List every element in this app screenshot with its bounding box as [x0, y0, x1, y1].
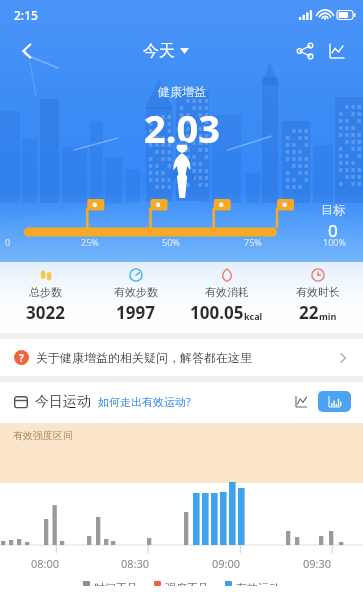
- staticText: kcal: [244, 310, 263, 322]
- staticText: 75%: [244, 236, 262, 248]
- staticText: 100%: [323, 236, 346, 248]
- staticText: 有效步数: [114, 285, 158, 299]
- staticText: 健康增益: [158, 84, 206, 99]
- button[interactable]: 趋势: [321, 35, 353, 67]
- staticText: 时间不足: [94, 581, 138, 586]
- staticText: 09:00: [212, 556, 241, 571]
- button[interactable]: 柱状图: [318, 391, 351, 412]
- button[interactable]: 有效运动: [225, 581, 280, 586]
- staticText: 关于健康增益的相关疑问，解答都在这里: [36, 350, 252, 365]
- staticText: 目标: [321, 202, 345, 217]
- staticText: 2:15: [14, 7, 38, 23]
- staticText: 1997: [116, 301, 155, 324]
- staticText: 0: [5, 236, 11, 248]
- button[interactable]: 有效时长: [272, 267, 363, 324]
- staticText: 有效时长: [296, 285, 340, 299]
- staticText: 今日运动: [35, 393, 91, 411]
- staticText: 09:30: [303, 556, 332, 571]
- button[interactable]: 返回: [10, 34, 44, 68]
- staticText: 50%: [162, 236, 180, 248]
- button[interactable]: 有效步数: [90, 267, 181, 324]
- staticText: 有效消耗: [205, 285, 249, 299]
- staticText: 25%: [81, 236, 99, 248]
- staticText: 有效强度区间: [13, 429, 73, 442]
- button[interactable]: 分享: [289, 35, 321, 67]
- staticText: 08:30: [121, 556, 150, 571]
- staticText: 3022: [26, 301, 65, 324]
- staticText: 2.03: [144, 102, 220, 154]
- staticText: 22: [299, 301, 319, 324]
- button[interactable]: 强度不足: [154, 581, 209, 586]
- button[interactable]: 有效消耗: [181, 267, 272, 324]
- button[interactable]: 曲线图: [285, 391, 318, 412]
- staticText: 总步数: [29, 285, 62, 299]
- staticText: min: [319, 310, 337, 322]
- button[interactable]: 时间不足: [83, 581, 138, 586]
- staticText: 有效运动: [236, 581, 280, 586]
- staticText: 100.05: [190, 301, 244, 324]
- button[interactable]: 总步数: [0, 267, 90, 324]
- staticText: 如何走出有效运动?: [98, 394, 191, 409]
- button[interactable]: ?: [0, 339, 363, 376]
- staticText: 今天: [143, 41, 175, 61]
- staticText: 强度不足: [165, 581, 209, 586]
- staticText: ?: [19, 351, 24, 365]
- button[interactable]: 今天: [137, 37, 195, 65]
- staticText: 0: [328, 219, 338, 242]
- staticText: 08:00: [31, 556, 60, 571]
- button[interactable]: 如何走出有效运动?: [98, 394, 191, 409]
